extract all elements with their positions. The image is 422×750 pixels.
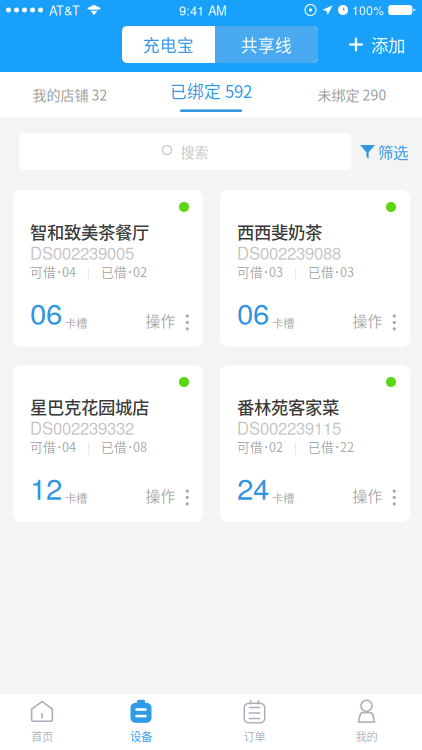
staticText: 星巴克花园城店: [30, 394, 149, 419]
staticText: 卡槽: [65, 315, 87, 331]
staticText: DS002239088: [237, 241, 341, 264]
staticText: DS002239115: [237, 416, 341, 439]
staticText: 已借･02: [101, 262, 147, 281]
staticText: 充电宝: [143, 32, 194, 56]
staticText: 番林苑客家菜: [237, 394, 339, 419]
staticText: 首页: [31, 728, 53, 744]
button[interactable]: 充电宝: [122, 26, 215, 63]
staticText: 已借･22: [308, 437, 354, 456]
staticText: 设备: [130, 728, 152, 744]
button[interactable]: 筛选: [351, 133, 415, 170]
staticText: 我的店铺 32: [32, 84, 107, 105]
staticText: DS002239005: [30, 241, 134, 264]
staticText: 操作: [145, 310, 175, 331]
staticText: 可借･02: [237, 437, 283, 456]
staticText: 操作: [352, 485, 382, 506]
staticText: 06: [237, 291, 269, 333]
button[interactable]: 星巴克花园城店: [13, 365, 203, 522]
button[interactable]: 共享线: [215, 26, 318, 63]
button[interactable]: 订单: [198, 694, 311, 750]
staticText: 智和致美茶餐厅: [30, 219, 149, 244]
staticText: 06: [30, 291, 62, 333]
staticText: AT&T: [49, 1, 80, 19]
staticText: 可借･04: [30, 437, 76, 456]
staticText: |: [87, 263, 90, 280]
staticText: 共享线: [241, 32, 292, 56]
staticText: 可借･03: [237, 262, 283, 281]
staticText: 9:41 AM: [179, 1, 227, 19]
staticText: 卡槽: [65, 490, 87, 506]
staticText: |: [294, 263, 297, 280]
staticText: 未绑定 290: [317, 84, 386, 105]
staticText: DS002239332: [30, 416, 134, 439]
button[interactable]: 首页: [0, 694, 84, 750]
button[interactable]: 番林苑客家菜: [220, 365, 410, 522]
staticText: 已借･08: [101, 437, 147, 456]
staticText: 卡槽: [272, 490, 294, 506]
staticText: |: [87, 438, 90, 455]
staticText: 已绑定 592: [170, 79, 252, 103]
button[interactable]: 我的店铺 32: [0, 72, 140, 117]
button[interactable]: 设备: [84, 694, 198, 750]
staticText: 已借･03: [308, 262, 354, 281]
staticText: 搜索: [180, 141, 208, 162]
staticText: 西西斐奶茶: [237, 219, 322, 244]
staticText: 我的: [355, 728, 377, 744]
button[interactable]: 我的: [311, 694, 422, 750]
staticText: 操作: [352, 310, 382, 331]
button[interactable]: 未绑定 290: [282, 72, 422, 117]
staticText: 添加: [371, 32, 405, 57]
staticText: 可借･04: [30, 262, 76, 281]
button[interactable]: 已绑定 592: [140, 72, 282, 117]
button[interactable]: 搜索: [19, 133, 351, 170]
staticText: 操作: [145, 485, 175, 506]
staticText: 100%: [352, 1, 384, 19]
staticText: 筛选: [378, 140, 408, 163]
staticText: 订单: [243, 728, 265, 744]
staticText: 12: [30, 466, 62, 508]
button[interactable]: 智和致美茶餐厅: [13, 190, 203, 347]
staticText: 卡槽: [272, 315, 294, 331]
staticText: 24: [237, 466, 269, 508]
staticText: |: [294, 438, 297, 455]
button[interactable]: 西西斐奶茶: [220, 190, 410, 347]
button[interactable]: 添加: [337, 22, 422, 66]
